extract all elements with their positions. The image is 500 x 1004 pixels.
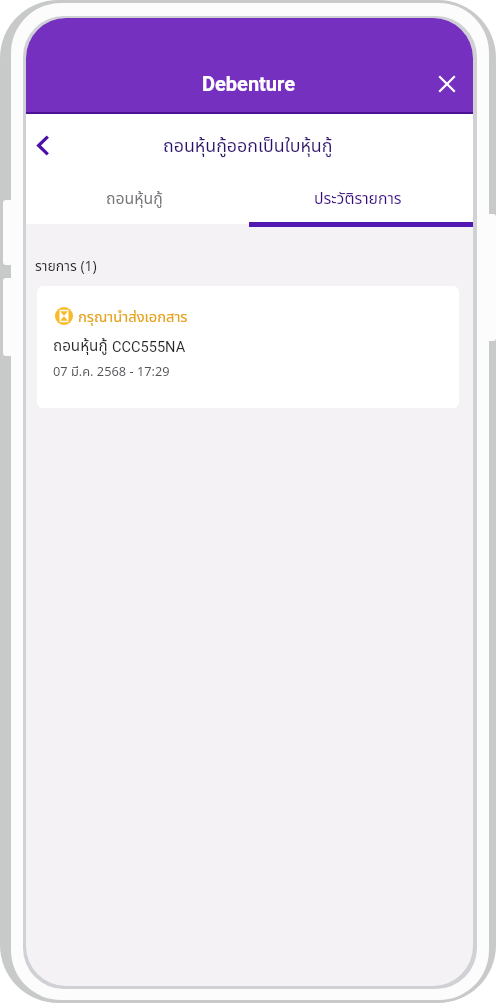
staticText: ถอนหุ้นกู้ — [53, 335, 108, 358]
staticText: รายการ (1) — [35, 256, 97, 277]
button[interactable]: ประวัติรายการ — [246, 181, 470, 217]
button[interactable]: Back — [26, 125, 63, 166]
staticText: ถอนหุ้นกู้ — [106, 187, 163, 211]
staticText: กรุณานำส่งเอกสาร — [78, 306, 188, 328]
staticText: CCC555NA — [112, 338, 186, 355]
button[interactable]: Close — [425, 62, 468, 105]
staticText: ถอนหุ้นกู้ออกเป็นใบหุ้นกู้ — [163, 133, 333, 160]
button[interactable]: กรุณานำส่งเอกสาร — [37, 286, 459, 408]
staticText: Debenture — [202, 72, 295, 95]
staticText: 07 มี.ค. 2568 - 17:29 — [53, 362, 170, 381]
button[interactable]: ถอนหุ้นกู้ — [26, 181, 246, 217]
staticText: ประวัติรายการ — [314, 187, 402, 211]
